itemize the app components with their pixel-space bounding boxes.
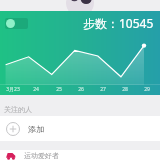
other: Activity badge [5, 150, 17, 160]
button[interactable]: Activity badge [0, 150, 160, 160]
staticText: 关注的人 [4, 105, 32, 114]
staticText: 29 [144, 86, 150, 93]
button[interactable]: Profile avatar [66, 0, 94, 17]
button[interactable]: Toggle step tracking [5, 18, 28, 29]
staticText: 3月23 [6, 86, 20, 93]
staticText: 24 [33, 86, 39, 93]
staticText: 运动爱好者 [24, 151, 59, 160]
staticText: 25 [56, 86, 62, 93]
button[interactable]: 添加 [0, 116, 160, 141]
staticText: 27 [100, 86, 106, 93]
staticText: 26 [78, 86, 84, 93]
staticText: 添加 [28, 124, 44, 134]
staticText: 28 [122, 86, 128, 93]
staticText: 步数：10545 [83, 15, 154, 31]
button[interactable]: Toggle step tracking [0, 11, 160, 95]
